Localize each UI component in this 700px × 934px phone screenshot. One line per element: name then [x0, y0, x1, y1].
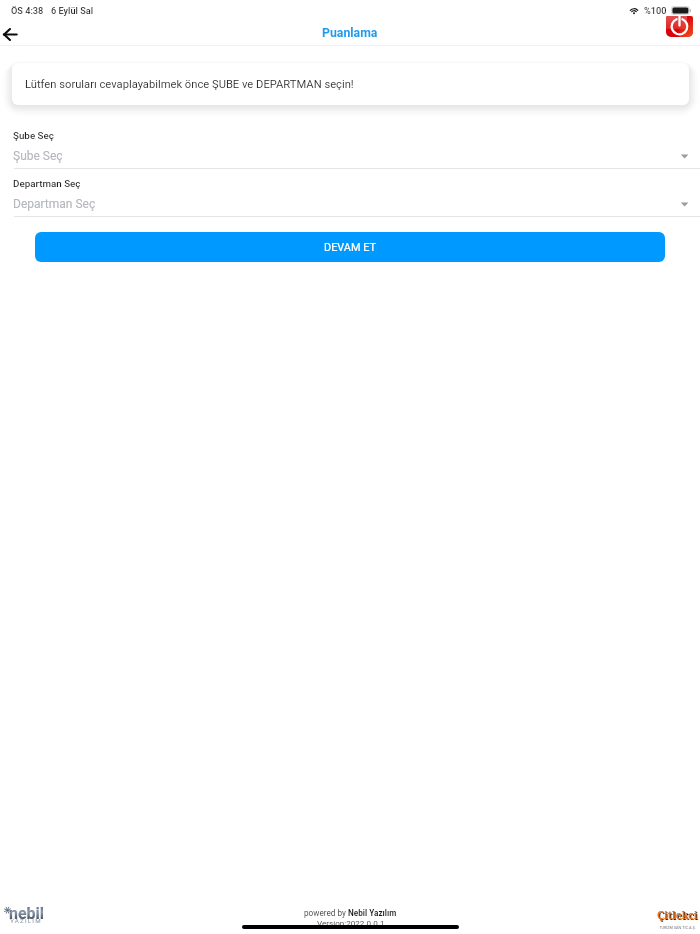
staticText: Şube Seç — [13, 130, 54, 141]
staticText: Çitlekci — [658, 909, 699, 923]
staticText: Çitlekci — [657, 908, 698, 922]
staticText: Departman Seç — [13, 178, 81, 189]
staticText: Lütfen soruları cevaplayabilmek önce ŞUB… — [25, 78, 354, 91]
staticText: powered by — [304, 908, 348, 918]
staticText: 6 Eylül Sal — [51, 5, 94, 16]
staticText: Version:2022.0.0.1 — [317, 918, 385, 927]
staticText: ÖS 4:38 — [11, 5, 44, 16]
staticText: Departman Seç — [13, 197, 680, 211]
staticText: Şube Seç — [13, 149, 680, 163]
staticText: YAZILIM — [10, 917, 42, 924]
button[interactable]: Departman Seç — [0, 178, 700, 217]
staticText: Nebil Yazılım — [348, 908, 397, 918]
button[interactable]: Şube Seç — [0, 130, 700, 169]
staticText: TURİZM SAN.TİC.A.Ş. — [659, 925, 696, 929]
button[interactable]: Back — [0, 22, 20, 46]
staticText: DEVAM ET — [324, 241, 376, 254]
staticText: %100 — [644, 5, 667, 16]
staticText: nebil — [9, 904, 45, 923]
staticText: Puanlama — [322, 26, 378, 40]
button[interactable]: Lütfen soruları cevaplayabilmek önce ŞUB… — [12, 63, 689, 105]
button[interactable]: DEVAM ET — [35, 232, 665, 262]
button[interactable]: Logout — [665, 15, 694, 37]
